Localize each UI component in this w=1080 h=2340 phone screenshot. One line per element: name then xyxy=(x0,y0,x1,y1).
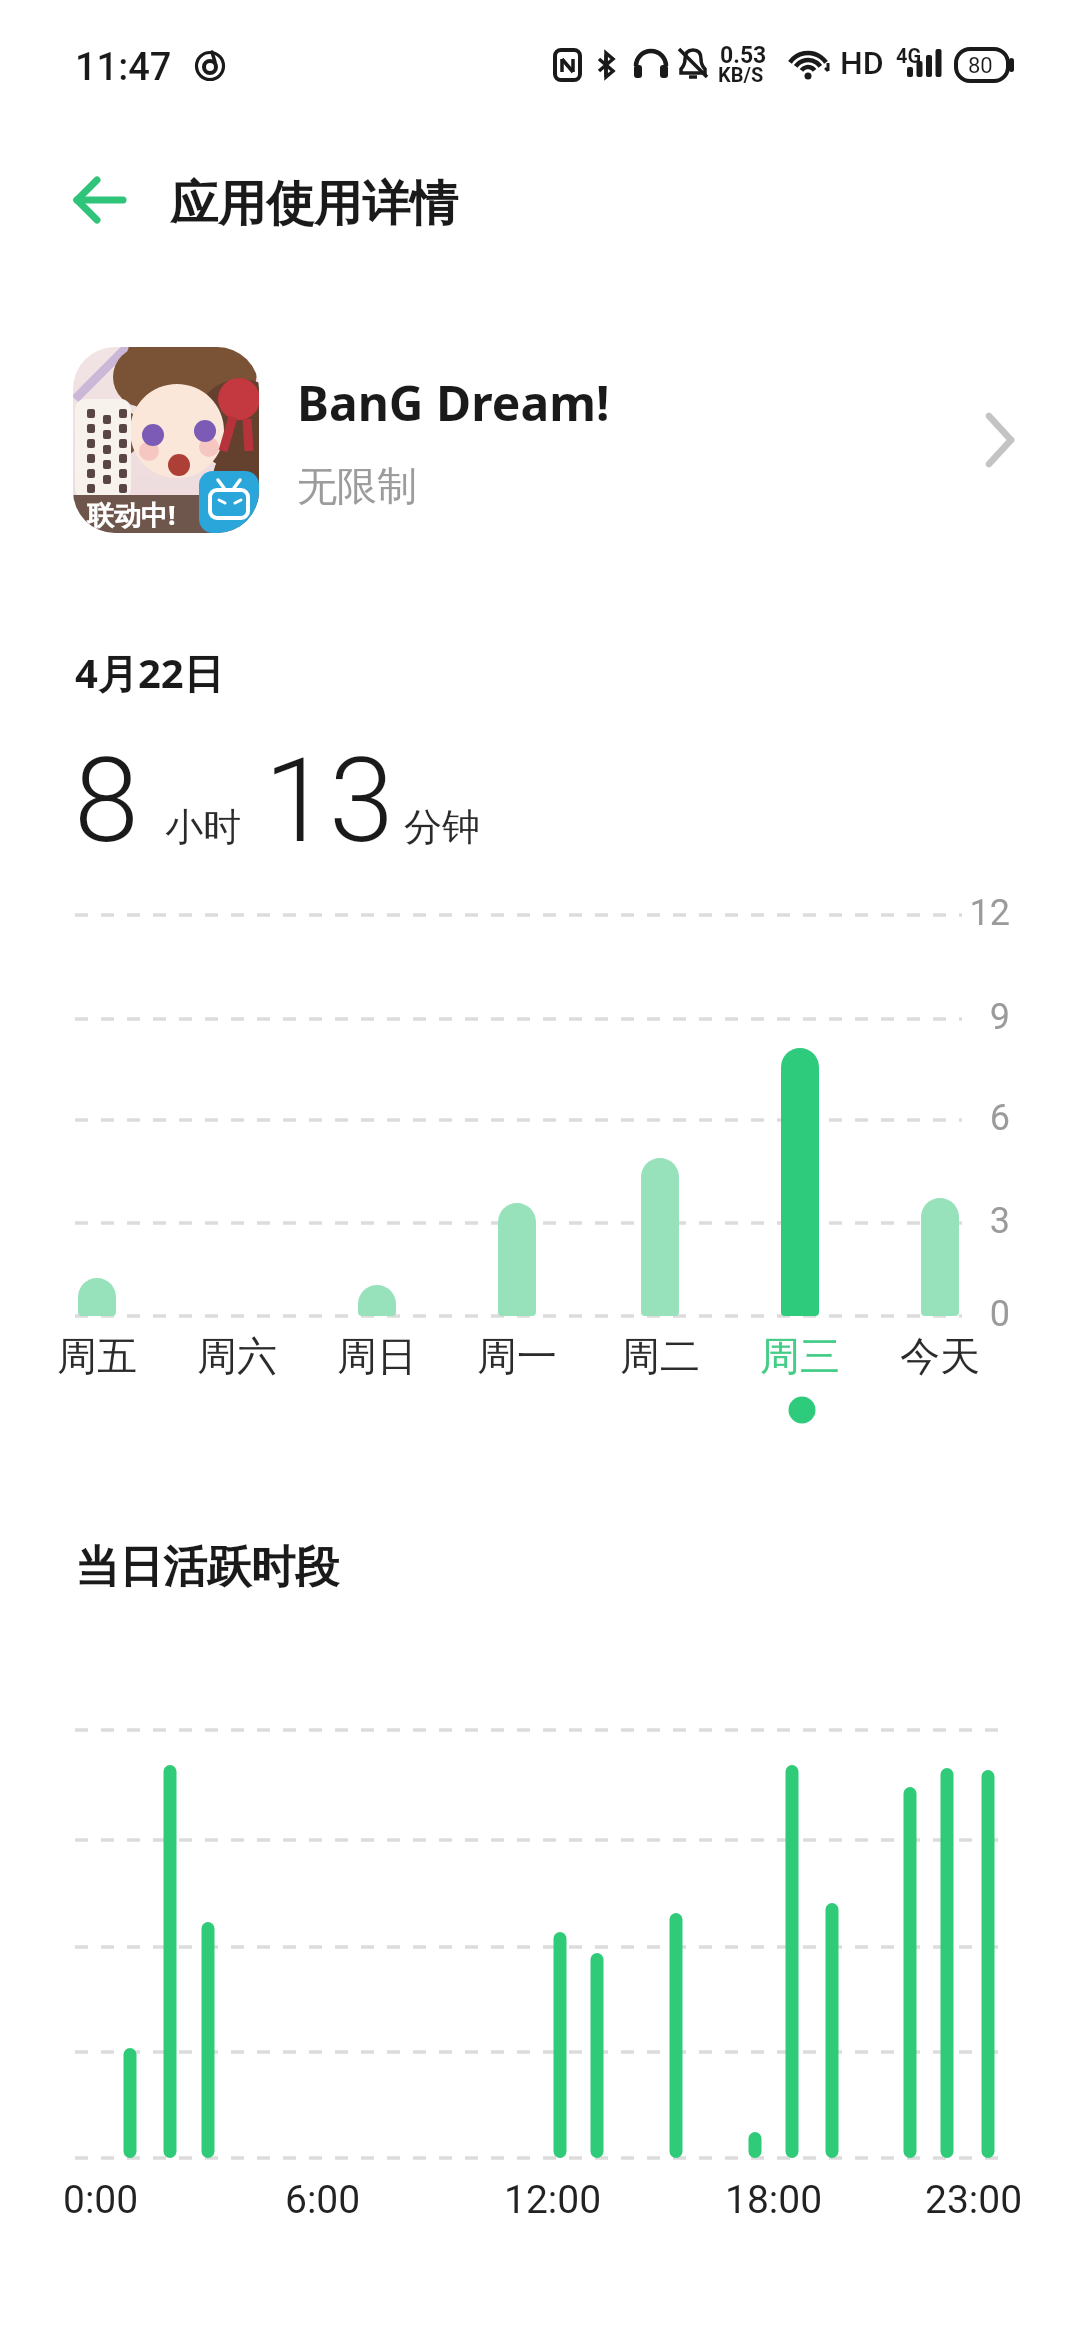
staticText: 18:00 xyxy=(725,2177,823,2223)
staticText: 周五 xyxy=(57,1331,137,1381)
button[interactable]: 周六 xyxy=(177,1331,297,1381)
staticText: 3 xyxy=(950,1200,1010,1242)
staticText: BanG Dream! xyxy=(297,370,610,435)
staticText: 4月22日 xyxy=(75,645,224,700)
staticText: 联动中! xyxy=(87,496,176,533)
staticText: 6 xyxy=(950,1097,1010,1139)
staticText: 应用使用详情 xyxy=(170,174,458,234)
staticText: 周六 xyxy=(197,1331,277,1381)
staticText: 13 xyxy=(264,732,394,869)
staticText: 0.53 xyxy=(720,42,767,69)
staticText: 12:00 xyxy=(504,2177,602,2223)
staticText: 9 xyxy=(950,996,1010,1038)
staticText: 8 xyxy=(74,732,139,869)
staticText: 0:00 xyxy=(63,2177,139,2223)
button[interactable]: 周二 xyxy=(600,1331,720,1381)
staticText: 0 xyxy=(950,1293,1010,1335)
button[interactable]: 今天 xyxy=(880,1331,1000,1381)
staticText: 周二 xyxy=(620,1331,700,1381)
button[interactable] xyxy=(60,168,140,232)
staticText: 周日 xyxy=(337,1331,417,1381)
staticText: 80 xyxy=(968,53,993,79)
staticText: 今天 xyxy=(900,1331,980,1381)
staticText: 当日活跃时段 xyxy=(75,1540,339,1595)
staticText: 23:00 xyxy=(925,2177,1023,2223)
button[interactable]: 周一 xyxy=(457,1331,577,1381)
staticText: 周三 xyxy=(760,1331,840,1381)
button[interactable]: 周三 xyxy=(740,1331,860,1381)
staticText: 12 xyxy=(950,892,1010,934)
staticText: 4G xyxy=(896,44,922,67)
button[interactable]: 周日 xyxy=(317,1331,437,1381)
staticText: 无限制 xyxy=(297,461,417,511)
staticText: KB/S xyxy=(718,63,764,86)
button[interactable]: 周五 xyxy=(37,1331,157,1381)
staticText: 11:47 xyxy=(75,45,172,90)
staticText: 周一 xyxy=(477,1331,557,1381)
staticText: 6:00 xyxy=(285,2177,361,2223)
staticText: 分钟 xyxy=(404,803,480,851)
staticText: HD xyxy=(840,44,884,82)
staticText: 小时 xyxy=(165,803,241,851)
button[interactable]: 联动中! xyxy=(0,330,1080,550)
